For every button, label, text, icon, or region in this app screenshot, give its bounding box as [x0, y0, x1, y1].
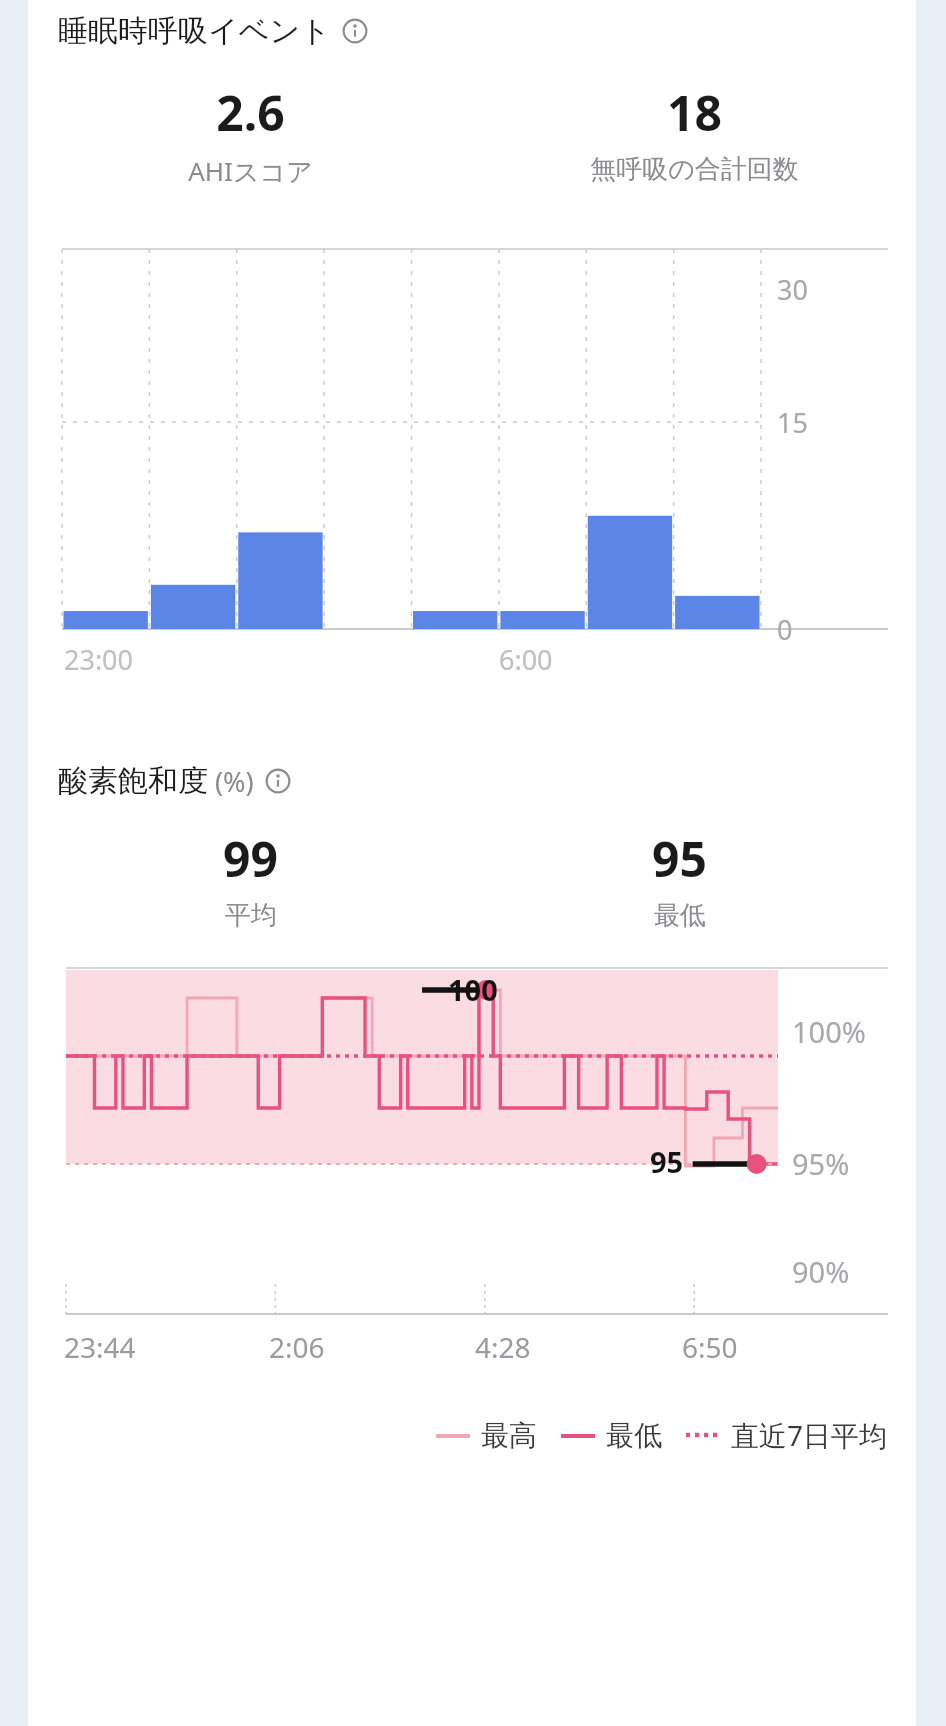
staticText: 100	[448, 970, 498, 1009]
staticText: 6:00	[499, 641, 553, 678]
staticText: 95	[650, 1142, 684, 1181]
staticText: 99	[223, 826, 278, 891]
staticText: AHIスコア	[188, 153, 313, 189]
staticText: 30	[777, 271, 808, 308]
staticText: 18	[667, 80, 722, 145]
staticText: 酸素飽和度	[58, 762, 208, 800]
staticText: 最低	[654, 899, 706, 932]
staticText: 2.6	[216, 80, 285, 145]
staticText: (%)	[215, 763, 254, 800]
button[interactable]: 95	[465, 826, 894, 932]
button[interactable]: 2.6	[28, 80, 472, 189]
button[interactable]: 最高	[434, 1418, 537, 1453]
button[interactable]: 酸素飽和度の説明	[265, 768, 291, 794]
button[interactable]: 99	[36, 826, 465, 932]
staticText: 95%	[792, 1144, 850, 1183]
staticText: 4:28	[475, 1328, 531, 1366]
staticText: 100%	[792, 1012, 866, 1051]
staticText: 23:44	[64, 1328, 136, 1366]
button[interactable]: 睡眠時呼吸イベントの説明	[342, 18, 368, 44]
staticText: 2:06	[269, 1328, 325, 1366]
staticText: 平均	[225, 899, 277, 932]
staticText: 23:00	[64, 641, 134, 678]
button[interactable]: 酸素飽和度	[58, 762, 291, 800]
button[interactable]: 直近7日平均	[684, 1416, 888, 1454]
button[interactable]: 最低	[559, 1418, 662, 1453]
button[interactable]: 18	[472, 80, 916, 186]
staticText: 最高	[481, 1418, 537, 1453]
staticText: 0	[777, 611, 793, 648]
staticText: 95	[652, 826, 707, 891]
staticText: 6:50	[682, 1328, 738, 1366]
staticText: 無呼吸の合計回数	[590, 153, 799, 186]
staticText: 睡眠時呼吸イベント	[58, 12, 331, 50]
staticText: 90%	[792, 1252, 850, 1291]
staticText: 最低	[606, 1418, 662, 1453]
button[interactable]: 睡眠時呼吸イベント	[58, 12, 368, 50]
staticText: 15	[777, 404, 808, 441]
staticText: 直近7日平均	[731, 1416, 888, 1454]
